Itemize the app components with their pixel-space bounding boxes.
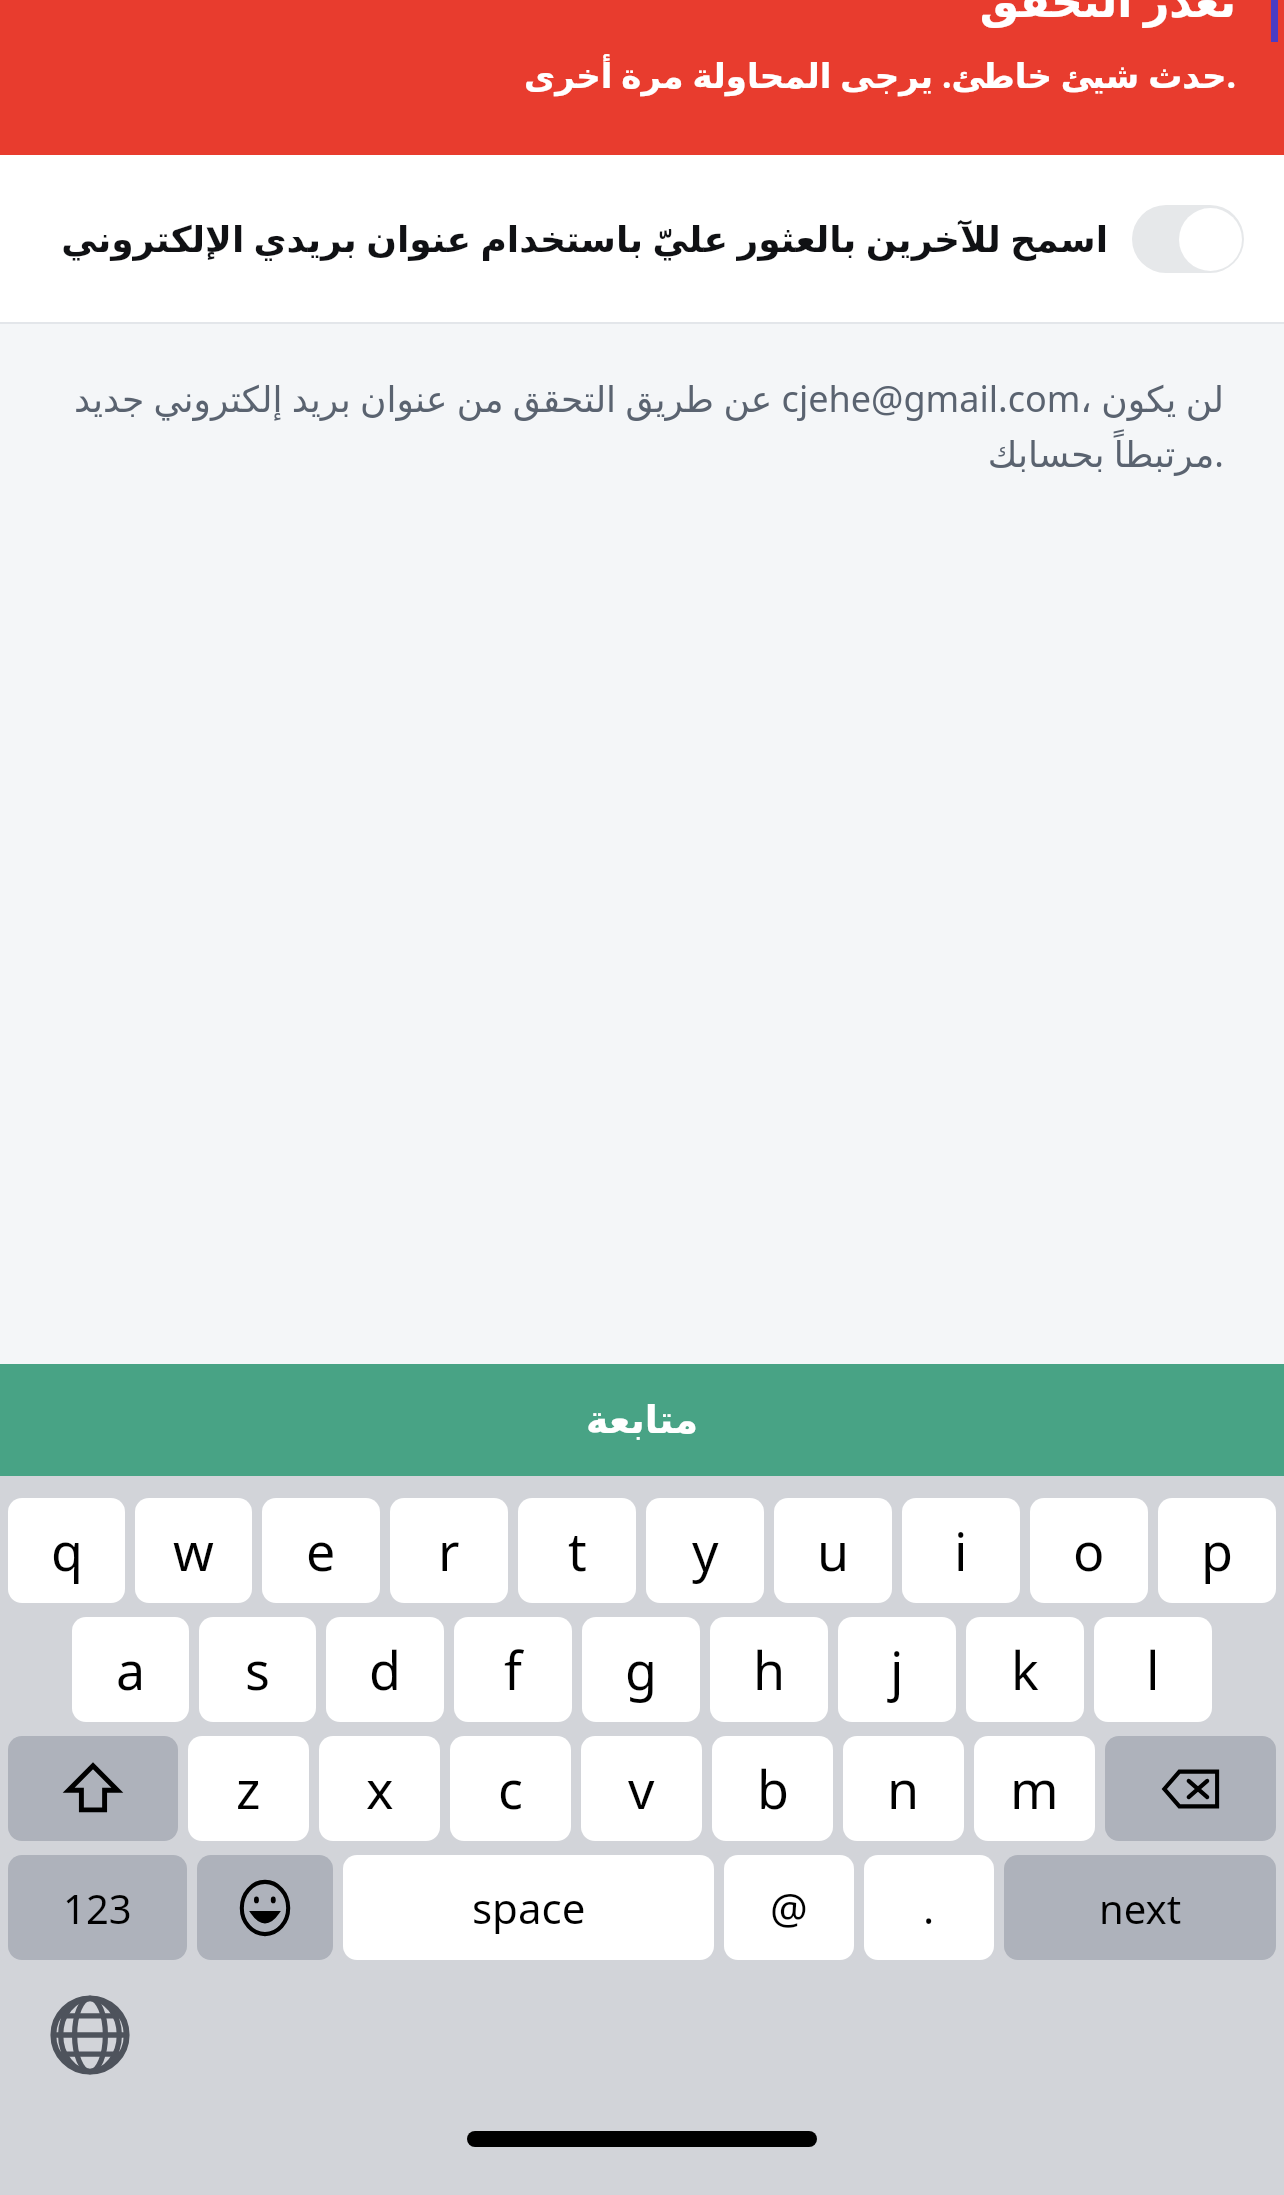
button[interactable]: c — [450, 1736, 571, 1841]
staticText: @ — [770, 1879, 808, 1936]
staticText: b — [757, 1753, 789, 1824]
staticText: x — [366, 1753, 394, 1824]
staticText: l — [1146, 1634, 1160, 1705]
button[interactable]: z — [188, 1736, 309, 1841]
staticText: m — [1010, 1753, 1059, 1824]
button[interactable]: Change keyboard language — [40, 1985, 140, 2085]
button[interactable]: k — [966, 1617, 1084, 1722]
button[interactable]: g — [582, 1617, 700, 1722]
staticText: j — [890, 1634, 904, 1705]
staticText: p — [1201, 1515, 1233, 1586]
staticText: s — [245, 1634, 270, 1705]
button[interactable]: w — [135, 1498, 252, 1603]
button[interactable]: متابعة — [0, 1364, 1284, 1476]
button[interactable]: @ — [724, 1855, 854, 1960]
staticText: i — [954, 1515, 968, 1586]
button[interactable]: n — [843, 1736, 964, 1841]
staticText: n — [887, 1753, 920, 1824]
staticText: . — [923, 1879, 935, 1936]
staticText: r — [438, 1515, 460, 1586]
button[interactable]: Backspace — [1105, 1736, 1276, 1841]
button[interactable]: q — [8, 1498, 125, 1603]
button[interactable]: p — [1158, 1498, 1276, 1603]
button[interactable]: i — [902, 1498, 1020, 1603]
staticText: متابعة — [586, 1398, 699, 1442]
staticText: t — [568, 1515, 587, 1586]
staticText: u — [817, 1515, 850, 1586]
staticText: h — [753, 1634, 786, 1705]
staticText: v — [628, 1753, 655, 1824]
staticText: حدث شيئ خاطئ. يرجى المحاولة مرة أخرى. — [524, 52, 1236, 98]
button[interactable]: space — [343, 1855, 714, 1960]
button[interactable]: e — [262, 1498, 380, 1603]
button[interactable]: اسمح للآخرين بالعثور عليّ باستخدام عنوان… — [0, 155, 1284, 322]
button[interactable]: m — [974, 1736, 1095, 1841]
button[interactable]: Shift — [8, 1736, 178, 1841]
button[interactable]: Allow others to find me by email — [1132, 205, 1244, 273]
button[interactable]: a — [72, 1617, 189, 1722]
button[interactable]: y — [646, 1498, 764, 1603]
button[interactable]: v — [581, 1736, 702, 1841]
button[interactable]: t — [518, 1498, 636, 1603]
staticText: a — [116, 1634, 146, 1705]
button[interactable]: 123 — [8, 1855, 187, 1960]
button[interactable]: Emoji — [197, 1855, 333, 1960]
staticText: f — [504, 1634, 522, 1705]
staticText: y — [692, 1515, 719, 1586]
button[interactable]: . — [864, 1855, 994, 1960]
button[interactable]: next — [1004, 1855, 1276, 1960]
button[interactable]: h — [710, 1617, 828, 1722]
staticText: k — [1011, 1634, 1039, 1705]
staticText: c — [498, 1753, 523, 1824]
staticText: e — [306, 1515, 336, 1586]
staticText: space — [472, 1879, 586, 1936]
staticText: q — [51, 1515, 83, 1586]
button[interactable]: s — [199, 1617, 316, 1722]
button[interactable]: l — [1094, 1617, 1212, 1722]
button[interactable]: x — [319, 1736, 440, 1841]
staticText: عن طريق التحقق من عنوان بريد إلكتروني جد… — [60, 374, 1224, 478]
button[interactable]: b — [712, 1736, 833, 1841]
staticText: o — [1073, 1515, 1105, 1586]
staticText: اسمح للآخرين بالعثور عليّ باستخدام عنوان… — [40, 214, 1108, 263]
button[interactable]: d — [326, 1617, 444, 1722]
button[interactable]: u — [774, 1498, 892, 1603]
staticText: تعذّر التحقق — [979, 0, 1236, 30]
button[interactable]: r — [390, 1498, 508, 1603]
staticText: w — [173, 1515, 214, 1586]
button[interactable]: j — [838, 1617, 956, 1722]
staticText: z — [236, 1753, 261, 1824]
staticText: next — [1099, 1881, 1182, 1935]
staticText: 123 — [63, 1881, 132, 1935]
staticText: g — [625, 1634, 657, 1705]
staticText: d — [369, 1634, 401, 1705]
button[interactable]: o — [1030, 1498, 1148, 1603]
button[interactable]: f — [454, 1617, 572, 1722]
